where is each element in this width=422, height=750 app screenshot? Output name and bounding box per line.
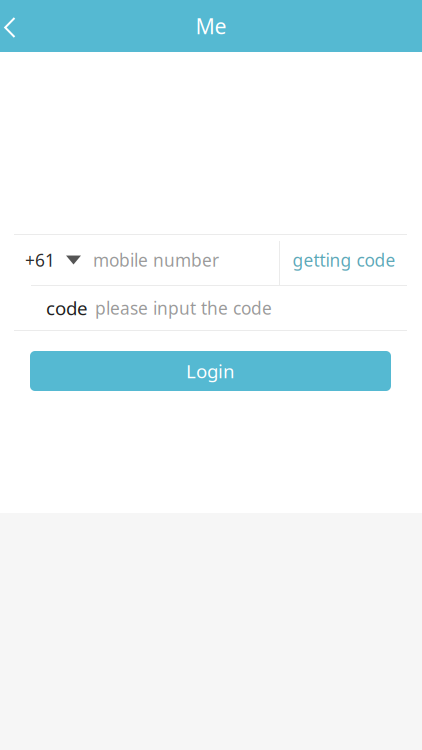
- staticText: Login: [186, 359, 235, 383]
- button[interactable]: Country dial code, plus 61: [0, 235, 93, 285]
- button[interactable]: Login: [30, 351, 391, 391]
- staticText: code: [46, 296, 88, 320]
- staticText: please input the code: [95, 296, 272, 319]
- staticText: Me: [195, 12, 226, 40]
- button[interactable]: getting code: [279, 235, 422, 285]
- button[interactable]: mobile number: [93, 235, 279, 285]
- staticText: +61: [25, 248, 55, 271]
- button[interactable]: code: [0, 286, 422, 330]
- button[interactable]: Back: [0, 0, 48, 52]
- staticText: mobile number: [93, 248, 219, 271]
- staticText: getting code: [292, 248, 395, 271]
